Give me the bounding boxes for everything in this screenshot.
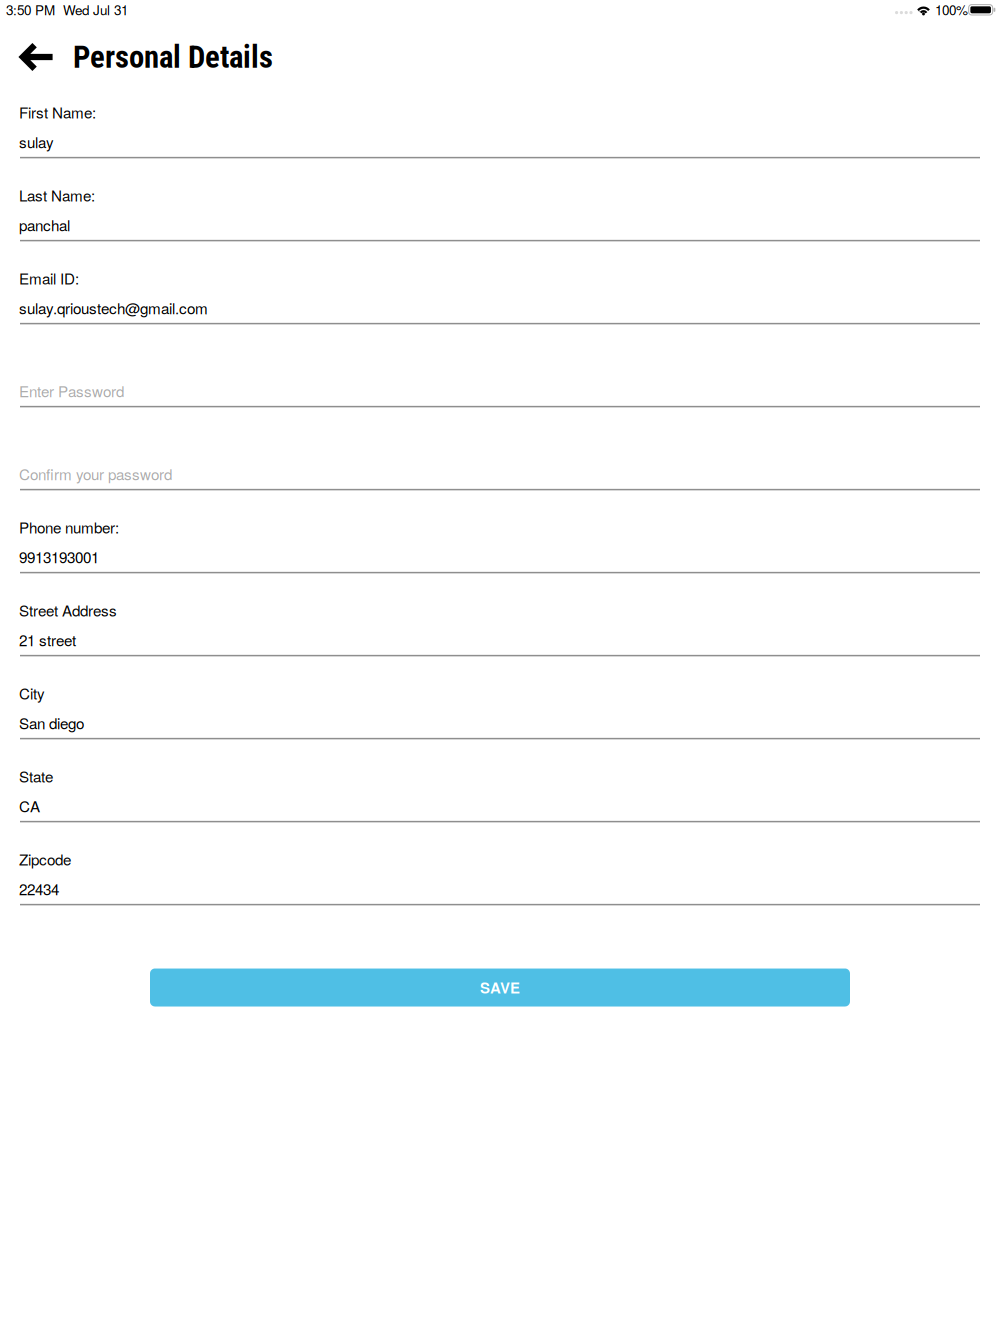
staticText: Confirm your password — [19, 463, 172, 485]
staticText: Personal Details — [73, 39, 273, 75]
staticText: Street Address — [19, 599, 117, 621]
staticText: Wed Jul 31 — [63, 0, 128, 19]
staticText: Phone number: — [19, 516, 119, 538]
staticText: 3:50 PM — [6, 0, 55, 19]
staticText: Last Name: — [19, 184, 95, 206]
staticText: State — [19, 765, 53, 787]
staticText: CA — [19, 795, 40, 817]
staticText: 21 street — [19, 629, 76, 651]
staticText: panchal — [19, 214, 70, 236]
staticText: 22434 — [19, 878, 59, 900]
staticText: sulay — [19, 131, 54, 153]
button[interactable]: Back — [0, 29, 72, 85]
staticText: 100% — [935, 0, 968, 19]
staticText: Email ID: — [19, 267, 79, 289]
staticText: San diego — [19, 712, 84, 734]
staticText: SAVE — [480, 977, 520, 998]
staticText: Zipcode — [19, 848, 71, 870]
staticText: Enter Password — [19, 380, 124, 402]
staticText: sulay.qrioustech@gmail.com — [19, 297, 208, 319]
staticText: First Name: — [19, 101, 96, 123]
staticText: City — [19, 682, 45, 704]
staticText: 9913193001 — [19, 546, 99, 568]
button[interactable]: SAVE — [150, 968, 850, 1006]
